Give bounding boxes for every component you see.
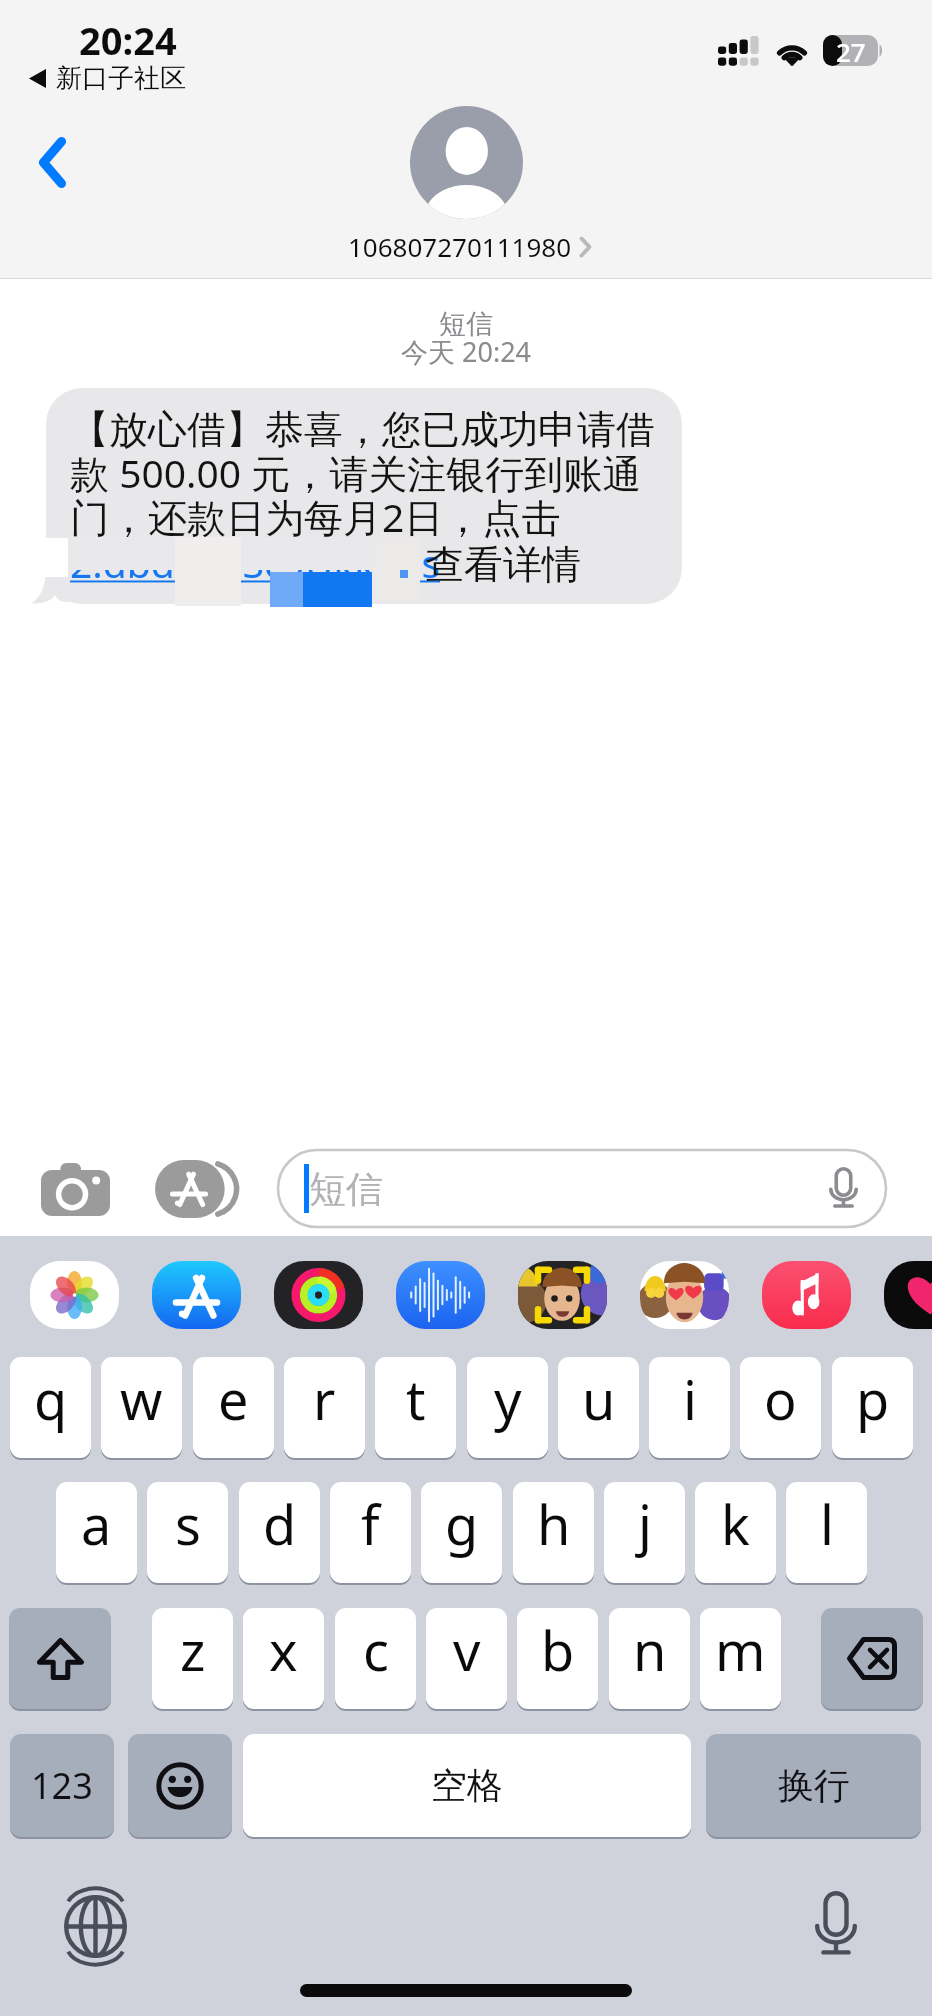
button[interactable]: Dictate	[829, 1167, 858, 1209]
button[interactable]: v	[426, 1608, 507, 1709]
staticText: p	[856, 1362, 890, 1436]
staticText: q	[34, 1362, 68, 1436]
staticText: e	[218, 1362, 249, 1436]
staticText: t	[406, 1362, 426, 1436]
staticText: i	[683, 1362, 697, 1436]
staticText: l	[820, 1487, 834, 1561]
button[interactable]: u	[558, 1357, 639, 1458]
staticText: x	[269, 1613, 298, 1687]
staticText: 20:24	[79, 14, 177, 66]
button[interactable]: o	[740, 1357, 821, 1458]
button[interactable]: r	[284, 1357, 365, 1458]
staticText: 今天 20:24	[0, 333, 932, 370]
button[interactable]: a	[56, 1482, 137, 1583]
staticText: m	[715, 1613, 766, 1687]
staticText: 新口子社区	[56, 62, 186, 95]
button[interactable]: k	[695, 1482, 776, 1583]
button[interactable]: App 6	[762, 1261, 851, 1329]
staticText: u	[582, 1362, 616, 1436]
button[interactable]: t	[375, 1357, 456, 1458]
button[interactable]: Change keyboard	[64, 1895, 127, 1958]
staticText: 短信	[309, 1166, 383, 1213]
staticText: 换行	[778, 1763, 850, 1808]
staticText: y	[494, 1362, 522, 1436]
button[interactable]: b	[517, 1608, 598, 1709]
button[interactable]: q	[10, 1357, 91, 1458]
staticText: 2.dbd.cn/Sc9Ukkq0s	[70, 536, 441, 589]
button[interactable]: z	[152, 1608, 233, 1709]
staticText: 短信	[0, 307, 932, 341]
button[interactable]: c	[335, 1608, 416, 1709]
button[interactable]: x	[243, 1608, 324, 1709]
button[interactable]: App 0	[30, 1261, 119, 1329]
staticText: h	[537, 1487, 571, 1561]
button[interactable]: Contact	[410, 106, 523, 219]
button[interactable]: Back	[14, 122, 94, 204]
staticText: j	[638, 1487, 652, 1561]
button[interactable]: App 3	[396, 1261, 485, 1329]
button[interactable]: App 7	[884, 1261, 932, 1329]
staticText: a	[81, 1487, 112, 1561]
staticText: 查看详情	[425, 540, 581, 589]
button[interactable]: g	[421, 1482, 502, 1583]
staticText: c	[363, 1613, 389, 1687]
button[interactable]: Camera	[41, 1163, 110, 1216]
staticText: 123	[31, 1761, 93, 1810]
button[interactable]: h	[513, 1482, 594, 1583]
button[interactable]: e	[193, 1357, 274, 1458]
staticText: r	[313, 1362, 336, 1436]
button[interactable]: l	[786, 1482, 867, 1583]
button[interactable]: m	[700, 1608, 781, 1709]
staticText: z	[180, 1613, 206, 1687]
button[interactable]: App 2	[274, 1261, 363, 1329]
staticText: o	[764, 1362, 797, 1436]
staticText: 106807270111980	[348, 229, 572, 264]
button[interactable]: Apps	[155, 1160, 240, 1218]
button[interactable]: 新口子社区	[29, 62, 186, 95]
button[interactable]: 123	[10, 1734, 114, 1837]
button[interactable]: Dictate	[815, 1891, 857, 1957]
button[interactable]: Backspace	[821, 1608, 923, 1709]
button[interactable]: n	[609, 1608, 690, 1709]
button[interactable]: s	[147, 1482, 228, 1583]
button[interactable]: f	[330, 1482, 411, 1583]
button[interactable]: App 1	[152, 1261, 241, 1329]
staticText: s	[175, 1487, 201, 1561]
staticText: n	[633, 1613, 667, 1687]
button[interactable]: y	[467, 1357, 548, 1458]
button[interactable]: 空格	[243, 1734, 691, 1837]
staticText: d	[263, 1487, 297, 1561]
staticText: 27	[836, 34, 866, 65]
button[interactable]: App 4	[518, 1261, 607, 1329]
staticText: k	[721, 1487, 750, 1561]
button[interactable]: Shift	[9, 1608, 111, 1709]
staticText: 空格	[431, 1763, 503, 1808]
button[interactable]: 换行	[706, 1734, 921, 1837]
button[interactable]	[46, 388, 682, 604]
button[interactable]: d	[239, 1482, 320, 1583]
staticText: 款 500.00 元，请关注银行到账通	[70, 446, 642, 499]
staticText: v	[453, 1613, 481, 1687]
button[interactable]: App 5	[640, 1261, 729, 1329]
staticText: 【放心借】恭喜，您已成功申请借	[70, 405, 655, 454]
button[interactable]: 106807270111980	[348, 229, 591, 264]
staticText: b	[541, 1613, 575, 1687]
button[interactable]: Emoji	[128, 1734, 232, 1837]
staticText: 门，还款日为每月2日，点击	[70, 490, 561, 543]
button[interactable]: w	[101, 1357, 182, 1458]
button[interactable]: i	[649, 1357, 730, 1458]
staticText: f	[361, 1487, 380, 1561]
button[interactable]: p	[832, 1357, 913, 1458]
staticText: g	[445, 1487, 479, 1561]
staticText: w	[120, 1362, 163, 1436]
button[interactable]: j	[604, 1482, 685, 1583]
